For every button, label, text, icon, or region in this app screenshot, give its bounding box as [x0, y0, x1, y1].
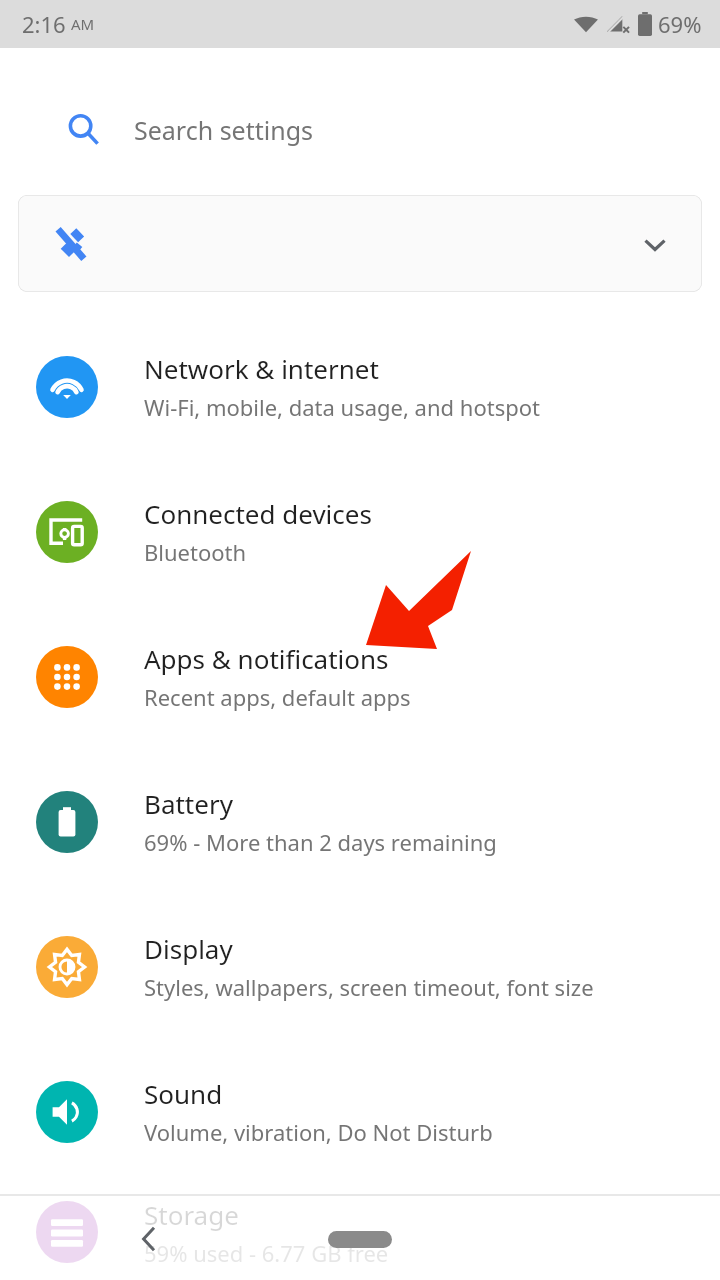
staticText: Network & internet [144, 351, 379, 386]
other: Expand suggestions [638, 227, 672, 261]
staticText: 69% - More than 2 days remaining [144, 827, 497, 857]
button[interactable]: Search [30, 82, 690, 177]
staticText: 2:16 [22, 9, 66, 39]
staticText: Display [144, 931, 233, 966]
button[interactable]: Storage [0, 1184, 720, 1280]
staticText: Recent apps, default apps [144, 682, 411, 712]
staticText: Battery [144, 786, 233, 821]
staticText: 69% [658, 9, 702, 39]
staticText: 59% used - 6.77 GB free [144, 1238, 389, 1268]
button[interactable]: Back [130, 1219, 170, 1259]
button[interactable]: Battery saver suggestion [18, 195, 702, 292]
other: Search [67, 113, 101, 147]
staticText: Volume, vibration, Do Not Disturb [144, 1117, 493, 1147]
staticText: Wi-Fi, mobile, data usage, and hotspot [144, 392, 540, 422]
button[interactable]: Home [328, 1231, 392, 1248]
staticText: Connected devices [144, 496, 372, 531]
button[interactable]: Connected devices [0, 459, 720, 604]
button[interactable]: Sound [0, 1039, 720, 1184]
button[interactable]: Network & internet [0, 314, 720, 459]
staticText: Sound [144, 1076, 223, 1111]
other: Battery saver suggestion [48, 221, 94, 267]
button[interactable]: Battery [0, 749, 720, 894]
staticText: Apps & notifications [144, 641, 389, 676]
staticText: Storage [144, 1197, 239, 1232]
staticText: Bluetooth [144, 537, 247, 567]
button[interactable]: Apps & notifications [0, 604, 720, 749]
button[interactable]: Display [0, 894, 720, 1039]
staticText: Styles, wallpapers, screen timeout, font… [144, 972, 594, 1002]
staticText: Search settings [134, 113, 314, 147]
staticText: AM [71, 14, 95, 34]
